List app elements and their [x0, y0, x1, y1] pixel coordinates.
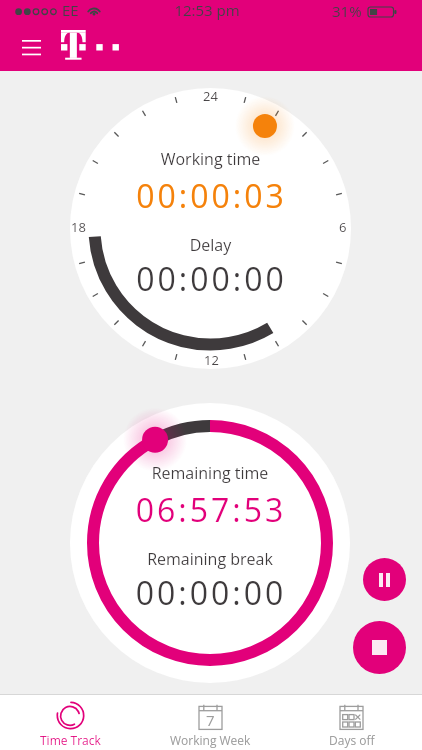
staticText: Working time	[70, 148, 351, 170]
staticText: 24	[203, 87, 218, 105]
staticText: 06:57:53	[71, 488, 351, 532]
staticText: 31%	[332, 1, 362, 21]
staticText: 00:00:00	[71, 257, 352, 301]
button[interactable]: Pause	[363, 558, 406, 601]
staticText: Remaining break	[70, 548, 350, 570]
button[interactable]: Stop	[353, 621, 406, 674]
staticText: EE	[62, 0, 79, 20]
staticText: Time Track	[40, 732, 101, 748]
staticText: Delay	[70, 234, 351, 256]
button[interactable]: Days off	[281, 694, 422, 750]
button[interactable]: 7	[140, 694, 281, 750]
staticText: 12	[204, 351, 219, 369]
staticText: Working Week	[170, 732, 251, 748]
button[interactable]: Time Track	[0, 694, 140, 750]
staticText: 6	[339, 218, 347, 236]
staticText: 18	[71, 218, 86, 236]
staticText: Days off	[329, 732, 375, 748]
staticText: 12:53 pm	[0, 0, 418, 20]
staticText: 00:00:03	[71, 174, 352, 218]
staticText: 00:00:00	[71, 571, 351, 615]
button[interactable]: Menu	[10, 26, 52, 68]
staticText: 7	[206, 710, 215, 730]
staticText: Remaining time	[70, 462, 350, 484]
